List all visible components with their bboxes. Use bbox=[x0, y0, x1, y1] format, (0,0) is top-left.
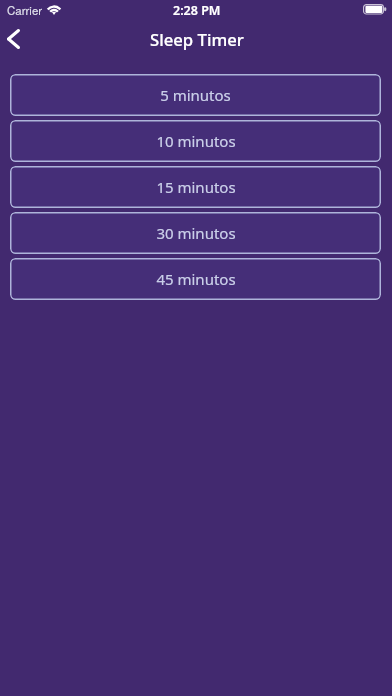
button[interactable]: 5 minutos bbox=[10, 74, 381, 116]
button[interactable]: 15 minutos bbox=[10, 166, 381, 208]
staticText: 45 minutos bbox=[156, 269, 236, 289]
staticText: Carrier bbox=[7, 2, 43, 18]
staticText: 5 minutos bbox=[160, 85, 231, 105]
button[interactable]: 45 minutos bbox=[10, 258, 381, 300]
button[interactable]: 10 minutos bbox=[10, 120, 381, 162]
staticText: 2:28 PM bbox=[173, 2, 221, 19]
button[interactable]: Back bbox=[0, 22, 34, 56]
staticText: 15 minutos bbox=[156, 177, 236, 197]
staticText: 10 minutos bbox=[156, 131, 236, 151]
staticText: Sleep Timer bbox=[150, 28, 244, 51]
button[interactable]: 30 minutos bbox=[10, 212, 381, 254]
staticText: 30 minutos bbox=[156, 223, 236, 243]
